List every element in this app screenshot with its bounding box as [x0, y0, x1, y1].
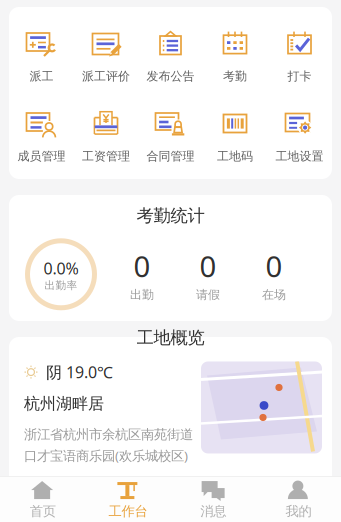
staticText: 考勤 — [223, 69, 247, 84]
staticText: 发布公告 — [146, 69, 194, 84]
staticText: 0 — [133, 246, 150, 285]
staticText: 工地码 — [217, 149, 253, 164]
staticText: 口才宝语商乐园(欢乐城校区) — [24, 447, 188, 464]
staticText: 0 — [265, 246, 282, 285]
staticText: 出勤率 — [44, 279, 77, 292]
button[interactable]: 消息 — [170, 475, 256, 522]
button[interactable]: 工地码 — [203, 93, 267, 173]
button[interactable]: 成员管理 — [9, 93, 74, 173]
staticText: 杭州湖畔居 — [24, 394, 104, 413]
staticText: 0 — [199, 246, 216, 285]
staticText: 工资管理 — [82, 149, 130, 164]
staticText: 出勤 — [130, 287, 154, 302]
staticText: 0.0% — [43, 258, 78, 279]
button[interactable]: 我的 — [256, 475, 341, 522]
button[interactable]: 发布公告 — [138, 13, 203, 93]
button[interactable]: 考勤 — [203, 13, 267, 93]
staticText: 我的 — [285, 503, 311, 519]
button[interactable]: 派工 — [9, 13, 74, 93]
button[interactable]: 工资管理 — [74, 93, 138, 173]
button[interactable]: 工作台 — [85, 475, 170, 522]
button[interactable]: 合同管理 — [138, 93, 203, 173]
staticText: 工作台 — [108, 503, 147, 519]
staticText: 打卡 — [287, 69, 311, 84]
staticText: 消息 — [200, 503, 226, 519]
staticText: 请假 — [196, 287, 220, 302]
staticText: 浙江省杭州市余杭区南苑街道 — [24, 426, 193, 443]
button[interactable]: 首页 — [0, 475, 85, 522]
staticText: 成员管理 — [17, 149, 65, 164]
staticText: 派工 — [29, 69, 53, 84]
staticText: 派工评价 — [82, 69, 130, 84]
staticText: 在场 — [262, 287, 286, 302]
staticText: 首页 — [30, 503, 56, 519]
staticText: 合同管理 — [146, 149, 194, 164]
button[interactable]: 打卡 — [267, 13, 332, 93]
staticText: 工地概览 — [136, 327, 204, 348]
staticText: 考勤统计 — [136, 205, 204, 226]
button[interactable]: 派工评价 — [74, 13, 138, 93]
staticText: 阴 19.0℃ — [46, 361, 113, 383]
staticText: 工地设置 — [275, 149, 323, 164]
button[interactable]: 工地设置 — [267, 93, 332, 173]
